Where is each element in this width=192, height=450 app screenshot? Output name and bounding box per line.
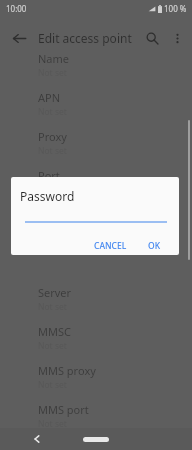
button[interactable]: MMS port (0, 402, 192, 435)
button[interactable]: Username (0, 207, 192, 240)
button[interactable]: Home (83, 437, 109, 442)
staticText: MMSC (38, 324, 71, 339)
staticText: Password (20, 188, 75, 204)
button[interactable]: Proxy (0, 129, 192, 162)
staticText: MMS proxy (38, 363, 96, 378)
button[interactable]: Port (0, 168, 192, 201)
staticText: Not set (38, 246, 67, 258)
button[interactable]: OK (143, 237, 166, 255)
staticText: Not set (38, 184, 67, 196)
staticText: Proxy (38, 129, 67, 144)
button[interactable]: APN (0, 90, 192, 123)
staticText: Server (38, 285, 72, 300)
staticText: Username (38, 207, 92, 222)
button[interactable]: Search (139, 25, 165, 51)
staticText: Port (38, 168, 60, 183)
staticText: 10:00 (6, 3, 27, 14)
staticText: Edit access point (38, 30, 132, 46)
button[interactable]: More options (165, 26, 189, 50)
button[interactable]: MMS proxy (0, 363, 192, 396)
staticText: 100 % (164, 3, 187, 14)
button[interactable]: Back (28, 430, 46, 448)
button[interactable]: MMSC (0, 324, 192, 357)
button[interactable]: CANCEL (89, 237, 132, 255)
staticText: OK (148, 240, 161, 252)
staticText: MMS port (38, 402, 89, 417)
staticText: Name (38, 51, 70, 66)
staticText: CANCEL (94, 240, 127, 252)
staticText: APN (38, 90, 61, 105)
button[interactable]: Navigate up (5, 24, 33, 52)
